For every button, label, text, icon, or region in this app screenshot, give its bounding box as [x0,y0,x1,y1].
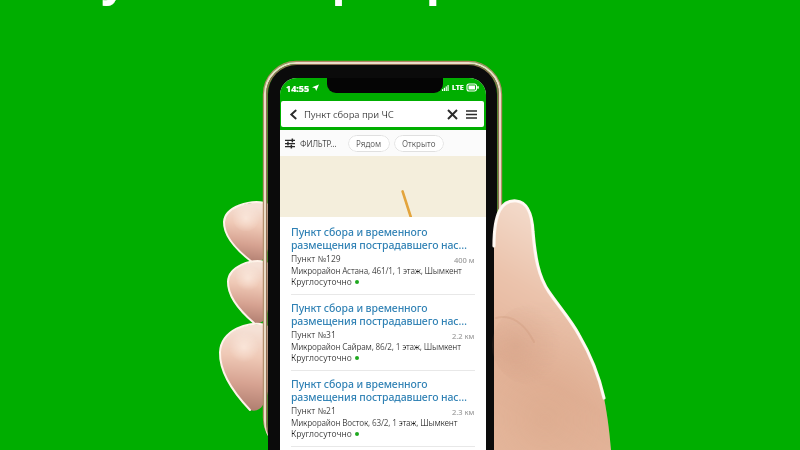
staticText: LTE [452,83,464,93]
staticText: Микрорайон Астана, 461/1, 1 этаж, Шымкен… [291,265,462,276]
staticText: 400 м [454,255,475,265]
staticText: Открыто [402,138,436,149]
button[interactable]: Рядом [348,135,390,152]
staticText: Круглосуточно [291,352,352,364]
staticText: 2.2 км [452,331,475,341]
staticText: Пункт сбора при ЧС [304,108,394,121]
button[interactable]: Открыто [394,135,444,152]
staticText: Пункт №21 [291,405,336,417]
staticText: Микрорайон Сайрам, 86/2, 1 этаж, Шымкент [291,341,461,352]
staticText: Пункт сбора и временного размещения пост… [291,301,475,328]
staticText: Круглосуточно [291,428,352,440]
button[interactable]: Пункт сбора и временного размещения пост… [280,225,486,301]
staticText: ФИЛЬТР… [300,138,337,149]
staticText: Пункт сбора и временного размещения пост… [291,225,475,252]
staticText: Пункт №31 [291,329,336,341]
staticText: Микрорайон Восток, 63/2, 1 этаж, Шымкент [291,417,458,428]
staticText: 14:55 [286,82,310,94]
button[interactable]: Clear search [447,109,458,120]
staticText: Рядом [356,138,382,149]
button[interactable]: Пункт сбора и временного размещения пост… [280,377,486,450]
button[interactable]: Пункт сбора и временного размещения пост… [280,301,486,377]
button[interactable]: ФИЛЬТР… [285,136,337,151]
staticText: 2.3 км [452,407,475,417]
button[interactable]: Back [281,101,484,127]
staticText: Пункт №129 [291,253,341,265]
staticText: Пункт сбора и временного размещения пост… [291,377,475,404]
staticText: Пункты сбора при ЧС [68,0,555,8]
button[interactable]: Back [288,109,299,120]
staticText: Круглосуточно [291,276,352,288]
button[interactable]: Menu [466,109,477,120]
